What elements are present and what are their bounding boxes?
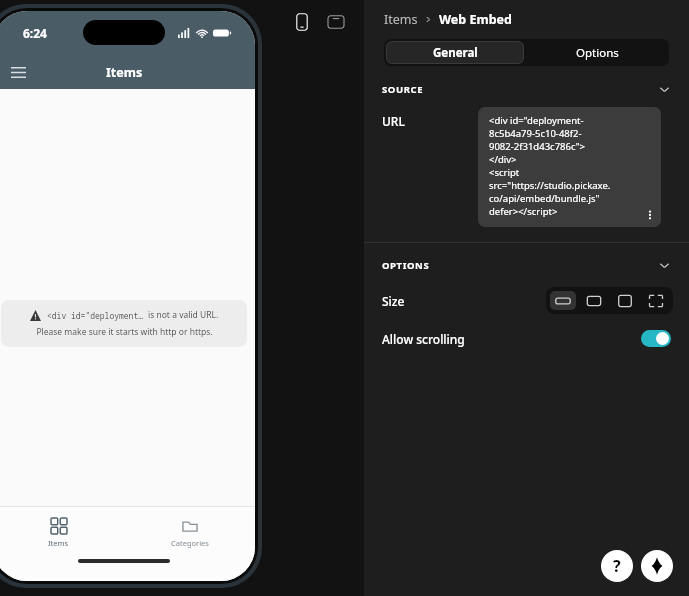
button[interactable]: Size option 3 (612, 291, 638, 310)
staticText: Web Embed (439, 11, 512, 28)
staticText: URL (382, 113, 478, 129)
button[interactable]: General (386, 41, 524, 64)
staticText: <div id="deployment- 8c5b4a79-5c10-48f2-… (489, 114, 611, 218)
button[interactable]: Collapse OPTIONS (655, 256, 673, 274)
staticText: General (433, 45, 478, 61)
button[interactable]: Help (601, 550, 633, 582)
staticText: Size (382, 293, 405, 309)
staticText: Items (48, 538, 69, 548)
staticText: is not a valid URL. (148, 309, 219, 321)
button[interactable]: Options (528, 41, 667, 64)
button[interactable]: Categories (124, 507, 255, 559)
staticText: 6:24 (23, 25, 47, 41)
button[interactable]: <div id="deployment- 8c5b4a79-5c10-48f2-… (478, 107, 661, 227)
staticText: <div id="deployment… (47, 310, 143, 321)
button[interactable]: Size option 2 (581, 291, 607, 310)
button[interactable]: Menu (7, 61, 29, 83)
staticText: Allow scrolling (382, 331, 465, 347)
staticText: Categories (171, 538, 209, 548)
staticText: Please make sure it starts with http or … (36, 326, 213, 338)
button[interactable]: Size option 1 (550, 291, 576, 310)
button[interactable]: AI assistant (641, 550, 673, 582)
button[interactable]: Items (384, 11, 418, 28)
staticText: SOURCE (382, 83, 424, 96)
staticText: OPTIONS (382, 259, 430, 272)
staticText: Items (106, 64, 143, 81)
button[interactable]: Allow scrolling toggle (641, 330, 671, 347)
staticText: ? (613, 555, 621, 577)
staticText: Options (576, 45, 619, 61)
button[interactable]: More options (642, 207, 658, 223)
button[interactable]: Size option 4 (643, 291, 669, 310)
button[interactable]: Phone preview (292, 12, 312, 32)
button[interactable]: Collapse SOURCE (655, 80, 673, 98)
button[interactable]: Tablet preview (326, 12, 346, 32)
button[interactable]: Items (0, 507, 124, 559)
